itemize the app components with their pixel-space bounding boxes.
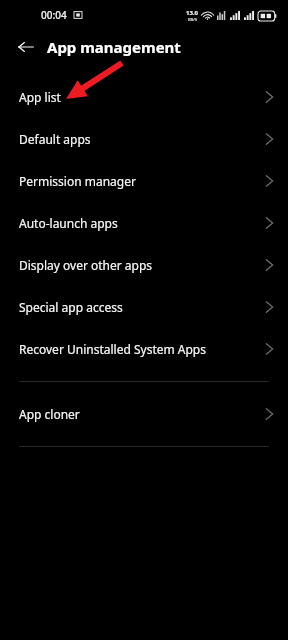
staticText: 00:04 bbox=[41, 8, 67, 22]
button[interactable]: Permission manager bbox=[0, 160, 288, 202]
button[interactable]: Default apps bbox=[0, 118, 288, 160]
button[interactable]: App list bbox=[0, 76, 288, 118]
button[interactable]: Recover Uninstalled System Apps bbox=[0, 328, 288, 370]
staticText: App management bbox=[47, 37, 181, 57]
staticText: 13.0 bbox=[186, 9, 198, 17]
staticText: Display over other apps bbox=[19, 257, 153, 273]
staticText: KB/S bbox=[188, 17, 197, 22]
button[interactable]: Back bbox=[13, 34, 39, 60]
staticText: App cloner bbox=[19, 406, 80, 422]
button[interactable]: App cloner bbox=[0, 393, 288, 435]
button[interactable]: Display over other apps bbox=[0, 244, 288, 286]
staticText: App list bbox=[19, 89, 61, 105]
button[interactable]: Special app access bbox=[0, 286, 288, 328]
button[interactable]: Auto-launch apps bbox=[0, 202, 288, 244]
staticText: Special app access bbox=[19, 299, 123, 315]
staticText: Permission manager bbox=[19, 173, 136, 189]
staticText: Auto-launch apps bbox=[19, 215, 118, 231]
staticText: Default apps bbox=[19, 131, 91, 147]
staticText: Recover Uninstalled System Apps bbox=[19, 341, 206, 357]
